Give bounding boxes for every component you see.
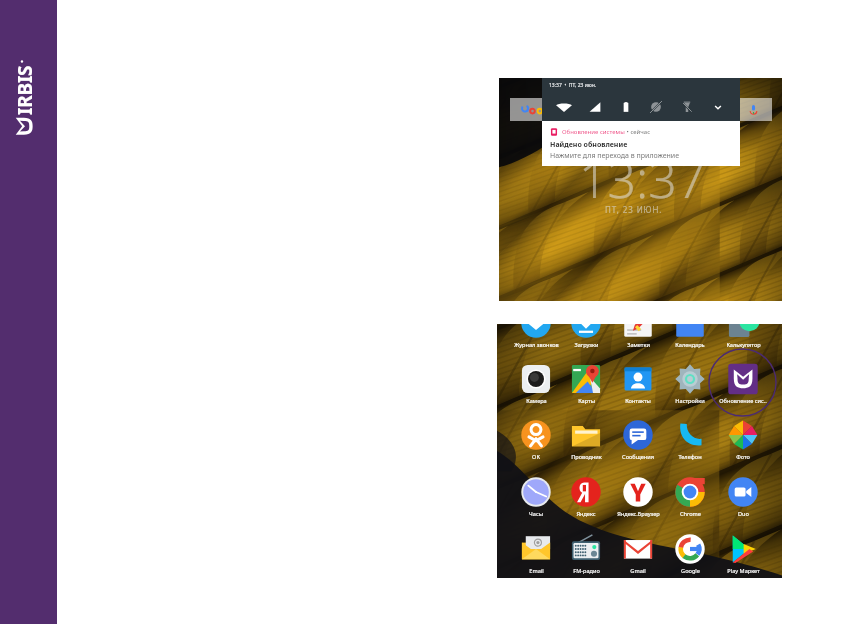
staticText: IRBIS — [12, 65, 36, 115]
staticText: Загрузки — [574, 341, 599, 349]
staticText: ПТ, 23 ИЮН. — [605, 204, 663, 215]
staticText: Gmail — [630, 567, 646, 575]
button[interactable]: Календарь — [664, 324, 716, 353]
button[interactable]: FM-радио — [560, 533, 612, 578]
button[interactable]: Проводник — [560, 419, 612, 465]
staticText: Калькулятор — [726, 341, 761, 349]
staticText: Часы — [529, 510, 543, 518]
button[interactable]: Камера — [510, 363, 562, 409]
button[interactable]: Chrome — [664, 476, 716, 522]
staticText: Журнал звонков — [514, 341, 559, 349]
staticText: Найдено обновление — [550, 140, 628, 150]
button[interactable]: Журнал звонков — [510, 324, 562, 353]
button[interactable]: Яндекс — [560, 476, 612, 522]
button[interactable]: Mobile data — [586, 98, 604, 116]
button[interactable]: Сообщения — [612, 419, 664, 465]
button[interactable]: Wi-Fi — [555, 98, 573, 116]
button[interactable]: Gmail — [612, 533, 664, 578]
staticText: Яндекс.Браузер — [617, 510, 660, 518]
staticText: Обновление сис.. — [719, 397, 767, 405]
button[interactable]: ОК — [510, 419, 562, 465]
staticText: Фото — [736, 453, 750, 461]
button[interactable]: Email — [510, 533, 562, 578]
button[interactable]: Play Маркет — [717, 533, 769, 578]
button[interactable]: Обновление системы: Найдено обновление — [542, 121, 740, 166]
staticText: • сейчас — [625, 128, 651, 136]
staticText: FM-радио — [573, 567, 600, 575]
button[interactable]: Фото — [717, 419, 769, 465]
button[interactable]: Google — [664, 533, 716, 578]
button[interactable]: Загрузки — [560, 324, 612, 353]
staticText: Проводник — [571, 453, 602, 461]
button[interactable]: Контакты — [612, 363, 664, 409]
button[interactable]: Do not disturb — [647, 98, 665, 116]
button[interactable]: Яндекс.Браузер — [612, 476, 664, 522]
button[interactable]: Google search — [510, 98, 772, 121]
staticText: 13:37 • ПТ, 23 июн. — [549, 82, 597, 89]
staticText: Chrome — [680, 510, 701, 518]
button[interactable]: Часы — [510, 476, 562, 522]
staticText: Нажмите для перехода в приложение — [550, 151, 680, 161]
staticText: Обновление системы — [562, 128, 625, 136]
staticText: Телефон — [678, 453, 702, 461]
staticText: Контакты — [625, 397, 651, 405]
staticText: Карты — [578, 397, 595, 405]
button[interactable]: Duo — [717, 476, 769, 522]
staticText: Календарь — [675, 341, 705, 349]
staticText: Email — [529, 567, 544, 575]
staticText: Google — [681, 567, 700, 575]
button[interactable]: Телефон — [664, 419, 716, 465]
staticText: ОК — [532, 453, 540, 461]
staticText: Заметки — [627, 341, 650, 349]
button[interactable]: Flashlight — [678, 98, 696, 116]
button[interactable]: Battery saver — [617, 98, 635, 116]
staticText: Сообщения — [622, 453, 654, 461]
staticText: Яндекс — [576, 510, 596, 518]
button[interactable]: Expand — [709, 98, 727, 116]
button[interactable]: Обновление сис.. — [717, 363, 769, 409]
staticText: 13:37 — [579, 145, 706, 213]
staticText: Duo — [738, 510, 749, 518]
staticText: Play Маркет — [727, 567, 760, 575]
button[interactable]: Настройки — [664, 363, 716, 409]
staticText: Настройки — [675, 397, 705, 405]
button[interactable]: Калькулятор — [717, 324, 769, 353]
staticText: Камера — [526, 397, 547, 405]
button[interactable]: Заметки — [612, 324, 664, 353]
button[interactable]: Карты — [560, 363, 612, 409]
